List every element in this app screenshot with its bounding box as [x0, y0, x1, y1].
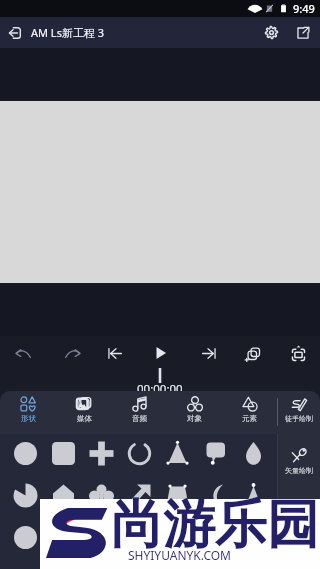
button[interactable]: Shape 13 [234, 474, 272, 516]
button[interactable]: Undo [9, 339, 37, 367]
button[interactable]: Shape 6 [234, 432, 272, 474]
staticText: 9:49 [293, 1, 315, 16]
button[interactable]: Shape 16 [82, 516, 120, 558]
button[interactable]: Skip to end [195, 339, 223, 367]
button[interactable]: Shape 7 [6, 474, 44, 516]
button[interactable]: Shape 20 [234, 516, 272, 558]
staticText: SHYIYUANYK.COM [128, 547, 232, 563]
staticText: 元素 [242, 414, 257, 423]
staticText: 矢量绘制 [285, 466, 313, 475]
button[interactable]: Skip to start [100, 339, 128, 367]
button[interactable]: Shape 2 [82, 432, 120, 474]
staticText: 尚游乐园 [111, 492, 319, 558]
button[interactable]: Duplicate [239, 339, 267, 367]
button[interactable]: Shape 17 [120, 516, 158, 558]
button[interactable]: Shape 4 [158, 432, 196, 474]
staticText: 音频 [132, 414, 147, 423]
button[interactable]: Play [147, 339, 175, 367]
button[interactable]: Shape 9 [82, 474, 120, 516]
button[interactable]: 矢量绘制 [278, 434, 320, 569]
staticText: 媒体 [77, 414, 92, 423]
button[interactable]: 媒体 [56, 391, 112, 434]
staticText: 对象 [187, 414, 202, 423]
staticText: 形状 [21, 414, 36, 423]
button[interactable]: Shape 1 [44, 432, 82, 474]
button[interactable]: Shape 8 [44, 474, 82, 516]
button[interactable]: 徒手绘制 [278, 391, 320, 434]
button[interactable]: Shape 15 [44, 516, 82, 558]
button[interactable]: Shape 12 [196, 474, 234, 516]
staticText: 00:00:00 [137, 381, 183, 397]
button[interactable]: 元素 [222, 391, 277, 434]
button[interactable]: Shape 19 [196, 516, 234, 558]
button[interactable]: Shape 3 [120, 432, 158, 474]
staticText: AM Ls新工程 3 [31, 25, 105, 40]
button[interactable]: Shape 14 [6, 516, 44, 558]
staticText: 徒手绘制 [285, 414, 313, 423]
button[interactable]: Redo [59, 339, 87, 367]
button[interactable]: 音频 [112, 391, 167, 434]
button[interactable]: Shape 10 [120, 474, 158, 516]
button[interactable]: 对象 [167, 391, 222, 434]
button[interactable]: Shape 18 [158, 516, 196, 558]
button[interactable]: Shape 5 [196, 432, 234, 474]
button[interactable]: Back [0, 17, 29, 48]
button[interactable]: Settings [255, 17, 287, 48]
button[interactable]: Export [287, 17, 319, 48]
button[interactable]: Shape 0 [6, 432, 44, 474]
button[interactable]: 形状 [0, 391, 56, 434]
button[interactable]: Shape 11 [158, 474, 196, 516]
button[interactable]: Fit to screen [284, 339, 312, 367]
